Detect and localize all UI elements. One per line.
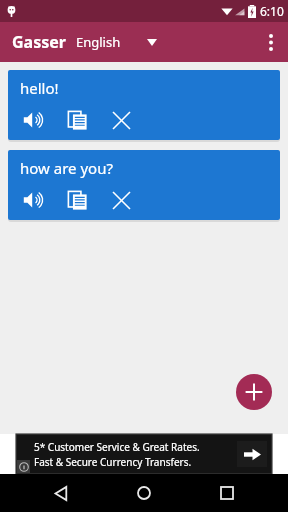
button[interactable]: Add phrase [236,374,272,410]
button[interactable]: Speak [20,107,46,133]
button[interactable]: Recent apps [205,474,249,512]
button[interactable]: Copy [64,187,90,213]
staticText: English [76,33,121,51]
staticText: Gasser [12,31,66,53]
staticText: Fast & Secure Currency Transfers. [34,455,192,469]
button[interactable]: 5* Customer Service & Great Rates. [16,434,272,474]
other: Ad info [17,460,30,473]
button[interactable]: Back [39,474,83,512]
button[interactable]: Copy [64,107,90,133]
button[interactable]: English [76,33,157,51]
staticText: 5* Customer Service & Great Rates. [34,440,200,454]
button[interactable]: how are you? [8,150,280,220]
staticText: hello! [20,78,59,98]
button[interactable]: Open ad [237,441,267,467]
button[interactable]: Delete [108,107,134,133]
button[interactable]: Delete [108,187,134,213]
button[interactable]: Speak [20,187,46,213]
button[interactable]: More options [254,22,288,62]
staticText: 6:10 [260,3,284,19]
staticText: how are you? [20,158,113,178]
button[interactable]: Home [122,474,166,512]
button[interactable]: hello! [8,70,280,140]
